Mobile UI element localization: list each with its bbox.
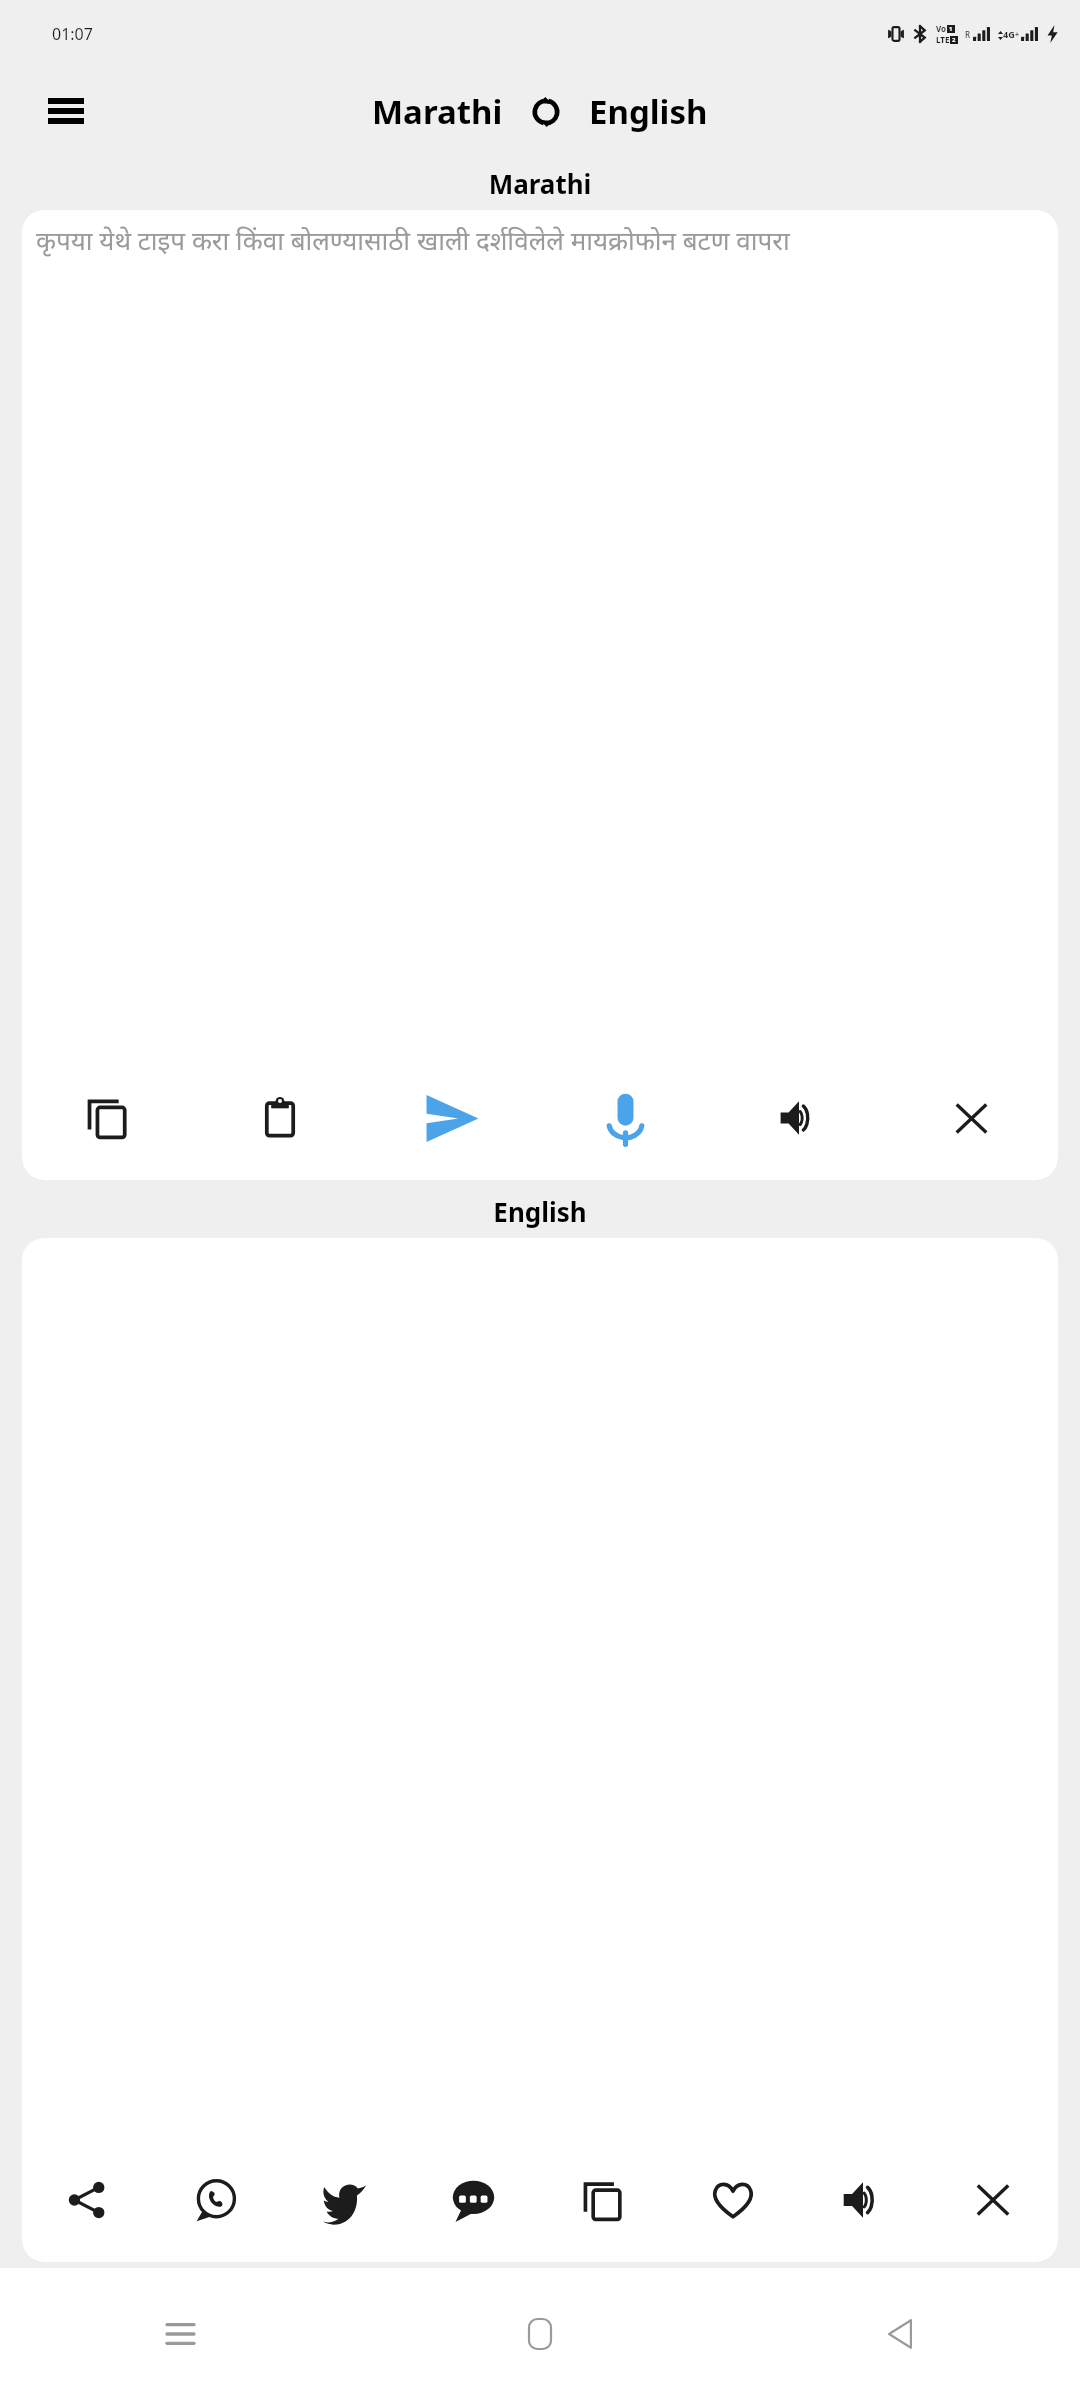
staticText: English [589, 89, 708, 134]
button[interactable]: Back [720, 2268, 1080, 2400]
button[interactable]: Swap languages [525, 91, 567, 133]
button[interactable]: Share on Twitter [280, 2154, 409, 2246]
staticText: English [0, 1194, 1080, 1229]
button[interactable]: Copy [538, 2154, 668, 2246]
button[interactable]: Copy [22, 1072, 194, 1164]
button[interactable]: Listen [712, 1072, 885, 1164]
button[interactable]: Clear [928, 2154, 1058, 2246]
staticText: 2 [952, 36, 956, 44]
staticText: Marathi [0, 166, 1080, 201]
staticText: 1 [949, 25, 953, 33]
button[interactable]: Share [22, 2154, 151, 2246]
button[interactable]: Home [360, 2268, 720, 2400]
staticText: LTE [936, 34, 950, 45]
button[interactable]: Clear [885, 1072, 1058, 1164]
button[interactable]: Speak [539, 1072, 712, 1164]
button[interactable]: Marathi [372, 89, 503, 134]
button[interactable]: Translate [366, 1072, 539, 1164]
button[interactable]: English [589, 89, 708, 134]
staticText: Vo [936, 23, 947, 34]
staticText: 01:07 [52, 23, 93, 45]
staticText: + [1015, 30, 1020, 40]
staticText: कृपया येथे टाइप करा किंवा बोलण्यासाठी खा… [36, 222, 790, 257]
button[interactable]: कृपया येथे टाइप करा किंवा बोलण्यासाठी खा… [22, 210, 1058, 1072]
button[interactable]: Open navigation menu [40, 85, 92, 137]
button[interactable]: Add to favourites [668, 2154, 798, 2246]
button[interactable]: Listen [798, 2154, 928, 2246]
button[interactable]: Send as SMS [409, 2154, 538, 2246]
button[interactable]: Paste [194, 1072, 366, 1164]
button[interactable]: Share on WhatsApp [151, 2154, 280, 2246]
staticText: Marathi [372, 89, 503, 134]
staticText: 4G [1003, 28, 1015, 40]
button[interactable]: Recent apps [0, 2268, 360, 2400]
staticText: R [965, 29, 971, 40]
